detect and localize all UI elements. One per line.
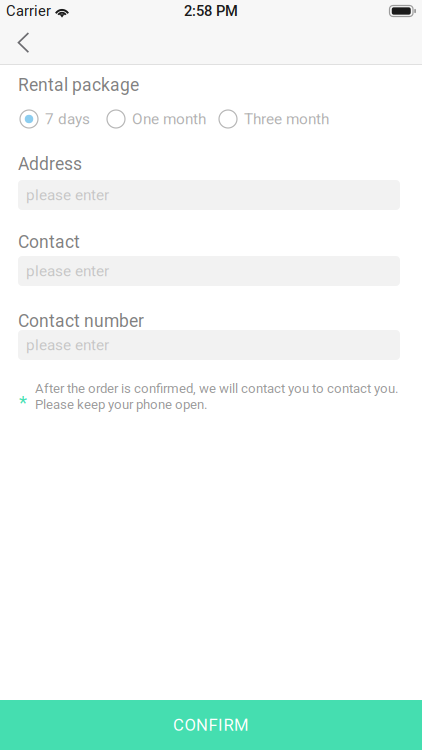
staticText: CONFIRM bbox=[173, 715, 249, 735]
staticText: Three month bbox=[244, 110, 329, 128]
button[interactable]: Back bbox=[0, 22, 58, 64]
staticText: Carrier bbox=[6, 2, 51, 20]
staticText: please enter bbox=[26, 186, 109, 204]
staticText: 2:58 PM bbox=[184, 2, 238, 20]
button[interactable]: 7 days bbox=[20, 109, 90, 129]
staticText: please enter bbox=[26, 336, 109, 354]
staticText: Address bbox=[18, 154, 82, 174]
button[interactable]: please enter bbox=[18, 180, 400, 210]
staticText: * bbox=[19, 392, 27, 413]
staticText: Please keep your phone open. bbox=[35, 397, 207, 412]
staticText: One month bbox=[132, 110, 206, 128]
button[interactable]: CONFIRM bbox=[0, 700, 422, 750]
button[interactable]: please enter bbox=[18, 256, 400, 286]
button[interactable]: please enter bbox=[18, 330, 400, 360]
button[interactable]: Three month bbox=[219, 109, 329, 129]
staticText: Contact number bbox=[18, 311, 144, 331]
button[interactable]: One month bbox=[107, 109, 206, 129]
staticText: Rental package bbox=[18, 75, 139, 95]
staticText: Contact bbox=[18, 232, 80, 252]
staticText: 7 days bbox=[45, 110, 90, 128]
staticText: please enter bbox=[26, 262, 109, 280]
staticText: After the order is confirmed, we will co… bbox=[35, 381, 398, 396]
